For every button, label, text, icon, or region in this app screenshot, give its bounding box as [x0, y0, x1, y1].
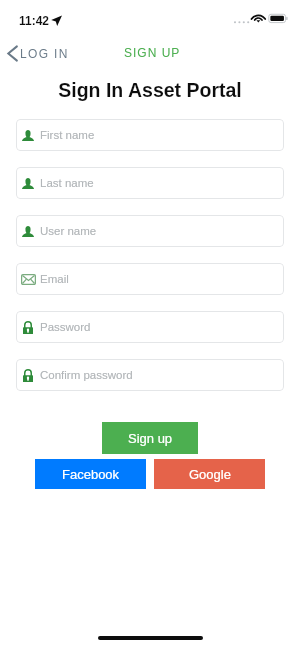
button[interactable]: Email [16, 263, 284, 295]
staticText: Email [40, 273, 69, 286]
button[interactable]: SIGN UP [120, 43, 185, 62]
button[interactable]: Google [154, 459, 265, 489]
staticText: 11:42 [19, 14, 50, 27]
button[interactable]: Confirm password [16, 359, 284, 391]
button[interactable]: Sign up [102, 422, 198, 454]
staticText: SIGN UP [124, 46, 181, 59]
staticText: User name [40, 225, 97, 238]
button[interactable]: User name [16, 215, 284, 247]
button[interactable]: LOG IN [4, 43, 77, 64]
button[interactable]: Facebook [35, 459, 146, 489]
staticText: First name [40, 129, 95, 142]
button[interactable]: First name [16, 119, 284, 151]
button[interactable]: Password [16, 311, 284, 343]
button[interactable]: Last name [16, 167, 284, 199]
other: Home indicator [98, 636, 203, 640]
staticText: LOG IN [20, 47, 69, 60]
staticText: Sign In Asset Portal [58, 79, 242, 101]
staticText: Sign up [128, 431, 173, 446]
staticText: Facebook [62, 467, 120, 482]
staticText: Google [189, 467, 231, 482]
staticText: Confirm password [40, 369, 133, 382]
staticText: Password [40, 321, 91, 334]
staticText: Last name [40, 177, 94, 190]
